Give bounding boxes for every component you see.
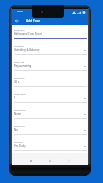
staticText: DURATION	[14, 77, 25, 80]
staticText: POSE TITLE	[14, 29, 25, 32]
staticText: SUPPORT	[14, 141, 23, 144]
staticText: Yes Daily	[14, 144, 84, 148]
staticText: Bitilasana (Cow Pose)	[14, 32, 87, 36]
staticText: CONDITION	[14, 109, 26, 112]
staticText: No	[14, 128, 84, 132]
staticText: 18:15	[17, 10, 23, 13]
button[interactable]: Home	[40, 153, 59, 165]
button[interactable]: Navigate up	[13, 16, 21, 25]
staticText: Add Pose	[26, 19, 41, 23]
staticText: Standing & Balance	[14, 48, 84, 52]
staticText: 30 s	[14, 80, 87, 84]
staticText: None	[14, 112, 84, 116]
staticText: ALIGNMENT	[14, 93, 26, 96]
staticText: WARRANTY	[14, 125, 25, 128]
staticText: 1	[14, 96, 84, 100]
staticText: CATEGORY	[14, 45, 25, 48]
staticText: POSE TYPE	[14, 61, 25, 64]
button[interactable]: Recents	[22, 153, 40, 165]
staticText: Rejuvenating	[14, 64, 84, 68]
